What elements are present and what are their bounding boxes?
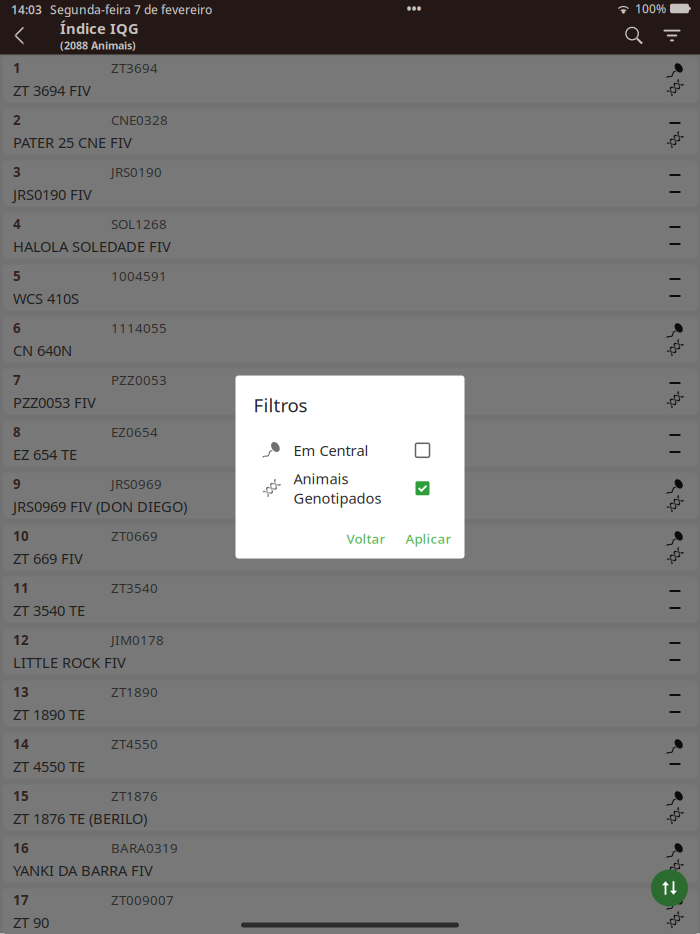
- button[interactable]: 17: [3, 888, 698, 934]
- staticText: JRS0190: [111, 163, 162, 181]
- staticText: 12: [13, 631, 29, 649]
- staticText: JRS0190 FIV: [13, 185, 92, 204]
- staticText: ZT 1890 TE: [13, 705, 85, 724]
- staticText: WCS 410S: [13, 289, 79, 308]
- button[interactable]: Aplicar: [393, 526, 459, 550]
- staticText: 14:03: [11, 1, 42, 17]
- staticText: 3: [13, 163, 21, 181]
- button[interactable]: Ordenar: [651, 869, 688, 906]
- staticText: Filtros: [253, 392, 307, 417]
- button[interactable]: 14: [3, 732, 698, 778]
- staticText: 14: [13, 735, 29, 753]
- button[interactable]: 9: [3, 472, 698, 518]
- button[interactable]: 15: [3, 784, 698, 830]
- button[interactable]: 16: [3, 836, 698, 882]
- staticText: ZT 4550 TE: [13, 757, 85, 776]
- staticText: ZT009007: [111, 891, 174, 909]
- button[interactable]: 5: [3, 264, 698, 310]
- staticText: ZT 90: [13, 913, 49, 932]
- staticText: JRS0969: [111, 475, 162, 493]
- staticText: 11: [13, 579, 29, 597]
- staticText: Índice IQG: [60, 19, 139, 38]
- button[interactable]: Voltar: [338, 526, 393, 550]
- staticText: Segunda-feira 7 de fevereiro: [50, 1, 212, 17]
- staticText: ZT0669: [111, 527, 158, 545]
- staticText: Genotipados: [293, 488, 381, 508]
- staticText: 17: [13, 891, 29, 909]
- staticText: JRS0969 FIV (DON DIEGO): [13, 497, 187, 516]
- staticText: 1: [13, 59, 21, 77]
- staticText: PZZ0053: [111, 371, 167, 389]
- staticText: LITTLE ROCK FIV: [13, 653, 126, 672]
- staticText: 2: [13, 111, 21, 129]
- button[interactable]: Animais: [235, 471, 464, 505]
- button[interactable]: 13: [3, 680, 698, 726]
- staticText: ZT 3694 FIV: [13, 81, 91, 100]
- staticText: ZT3540: [111, 579, 158, 597]
- staticText: Voltar: [346, 530, 385, 547]
- button[interactable]: Voltar: [0, 17, 39, 53]
- staticText: ZT 1876 TE (BERILO): [13, 809, 147, 828]
- button[interactable]: Filtrar: [654, 17, 690, 53]
- button[interactable]: 6: [3, 316, 698, 362]
- staticText: YANKI DA BARRA FIV: [13, 861, 153, 880]
- button[interactable]: 12: [3, 628, 698, 674]
- staticText: BARA0319: [111, 839, 178, 857]
- button[interactable]: 10: [3, 524, 698, 570]
- staticText: 100%: [635, 0, 666, 16]
- staticText: •••: [406, 0, 421, 17]
- staticText: CN 640N: [13, 341, 72, 360]
- staticText: ZT1876: [111, 787, 158, 805]
- staticText: EZ0654: [111, 423, 158, 441]
- staticText: ZT4550: [111, 735, 158, 753]
- staticText: 16: [13, 839, 29, 857]
- staticText: 4: [13, 215, 21, 233]
- button[interactable]: 7: [3, 368, 698, 414]
- button[interactable]: 1: [3, 56, 698, 102]
- staticText: JIM0178: [111, 631, 164, 649]
- staticText: 9: [13, 475, 21, 493]
- staticText: EZ 654 TE: [13, 445, 77, 464]
- staticText: ZT1890: [111, 683, 158, 701]
- staticText: 6: [13, 319, 21, 337]
- staticText: (2088 Animais): [60, 38, 136, 52]
- button[interactable]: 2: [3, 108, 698, 154]
- button[interactable]: 8: [3, 420, 698, 466]
- staticText: 13: [13, 683, 29, 701]
- button[interactable]: 4: [3, 212, 698, 258]
- staticText: ZT 669 FIV: [13, 549, 83, 568]
- staticText: 5: [13, 267, 21, 285]
- staticText: 1114055: [111, 319, 167, 337]
- staticText: ZT 3540 TE: [13, 601, 85, 620]
- button[interactable]: Em Central: [235, 433, 464, 467]
- staticText: 15: [13, 787, 29, 805]
- staticText: SOL1268: [111, 215, 167, 233]
- button[interactable]: 11: [3, 576, 698, 622]
- staticText: PATER 25 CNE FIV: [13, 133, 132, 152]
- staticText: Aplicar: [405, 530, 451, 547]
- staticText: Animais: [293, 469, 348, 488]
- staticText: Em Central: [293, 441, 368, 460]
- staticText: ZT3694: [111, 59, 158, 77]
- button[interactable]: Buscar: [614, 17, 654, 53]
- staticText: 10: [13, 527, 29, 545]
- staticText: 7: [13, 371, 21, 389]
- staticText: PZZ0053 FIV: [13, 393, 96, 412]
- staticText: 8: [13, 423, 21, 441]
- staticText: 1004591: [111, 267, 167, 285]
- staticText: CNE0328: [111, 111, 168, 129]
- button[interactable]: 3: [3, 160, 698, 206]
- staticText: HALOLA SOLEDADE FIV: [13, 237, 171, 256]
